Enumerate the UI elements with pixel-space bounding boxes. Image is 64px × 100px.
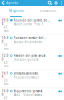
staticText: 16:00 <box>2 89 9 97</box>
button[interactable]: 14:15 <box>0 70 64 88</box>
staticText: 12:00 <box>2 54 9 61</box>
staticText: Puesta en común del... <box>13 36 46 40</box>
staticText: Entrevista candidato <box>13 72 38 75</box>
staticText: Invitaciones <box>40 9 56 13</box>
staticText: Sala 2 · Videollamada <box>13 93 41 97</box>
staticText: 10:30 <box>2 36 9 43</box>
staticText: Seguimiento semanal <box>13 89 42 93</box>
staticText: 30 min <box>4 43 9 50</box>
button[interactable]: Search <box>47 0 53 6</box>
staticText: 45 min <box>4 97 9 100</box>
staticText: Revisión del plan anual <box>13 54 45 57</box>
button[interactable]: 10:30 <box>0 35 64 52</box>
staticText: Agenda <box>6 1 17 5</box>
staticText: 14:15 <box>2 72 9 79</box>
button[interactable]: Add <box>53 0 59 6</box>
staticText: 60 min <box>4 61 9 68</box>
button[interactable]: More <box>59 0 64 6</box>
button[interactable]: 12:00 <box>0 52 64 70</box>
staticText: Recursos humanos <box>13 76 38 79</box>
button[interactable]: Invitaciones <box>32 6 64 17</box>
staticText: Mi agenda <box>9 9 23 13</box>
staticText: 09:00 <box>2 19 9 26</box>
staticText: Dirección general <box>13 58 38 61</box>
button[interactable]: Mi agenda <box>0 6 32 17</box>
staticText: Reunión del comité de... <box>13 19 50 22</box>
button[interactable]: 16:00 <box>0 88 64 100</box>
button[interactable]: 09:00 <box>0 17 64 34</box>
staticText: 20 min <box>4 79 9 86</box>
staticText: 45 min <box>4 26 9 33</box>
button[interactable]: Agenda <box>0 0 18 6</box>
staticText: Sala de juntas · Piso 3 <box>13 22 43 26</box>
staticText: Equipo de producto <box>13 40 42 44</box>
